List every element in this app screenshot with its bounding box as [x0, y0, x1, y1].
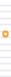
- button[interactable]: List row 5: [0, 25, 11, 32]
- button[interactable]: List row 12: [0, 71, 11, 77]
- button[interactable]: List row 11: [0, 64, 11, 71]
- button[interactable]: List row 3: [0, 12, 11, 19]
- button[interactable]: List row 2: [0, 6, 11, 12]
- button[interactable]: List row 10: [0, 58, 11, 64]
- button[interactable]: List row 9: [0, 51, 11, 58]
- button[interactable]: List row 7: [0, 38, 11, 45]
- button[interactable]: List row 4: [0, 19, 11, 25]
- button[interactable]: List row 8: [0, 45, 11, 51]
- button[interactable]: List row 1: [0, 0, 11, 6]
- button[interactable]: List row 6: [0, 32, 11, 38]
